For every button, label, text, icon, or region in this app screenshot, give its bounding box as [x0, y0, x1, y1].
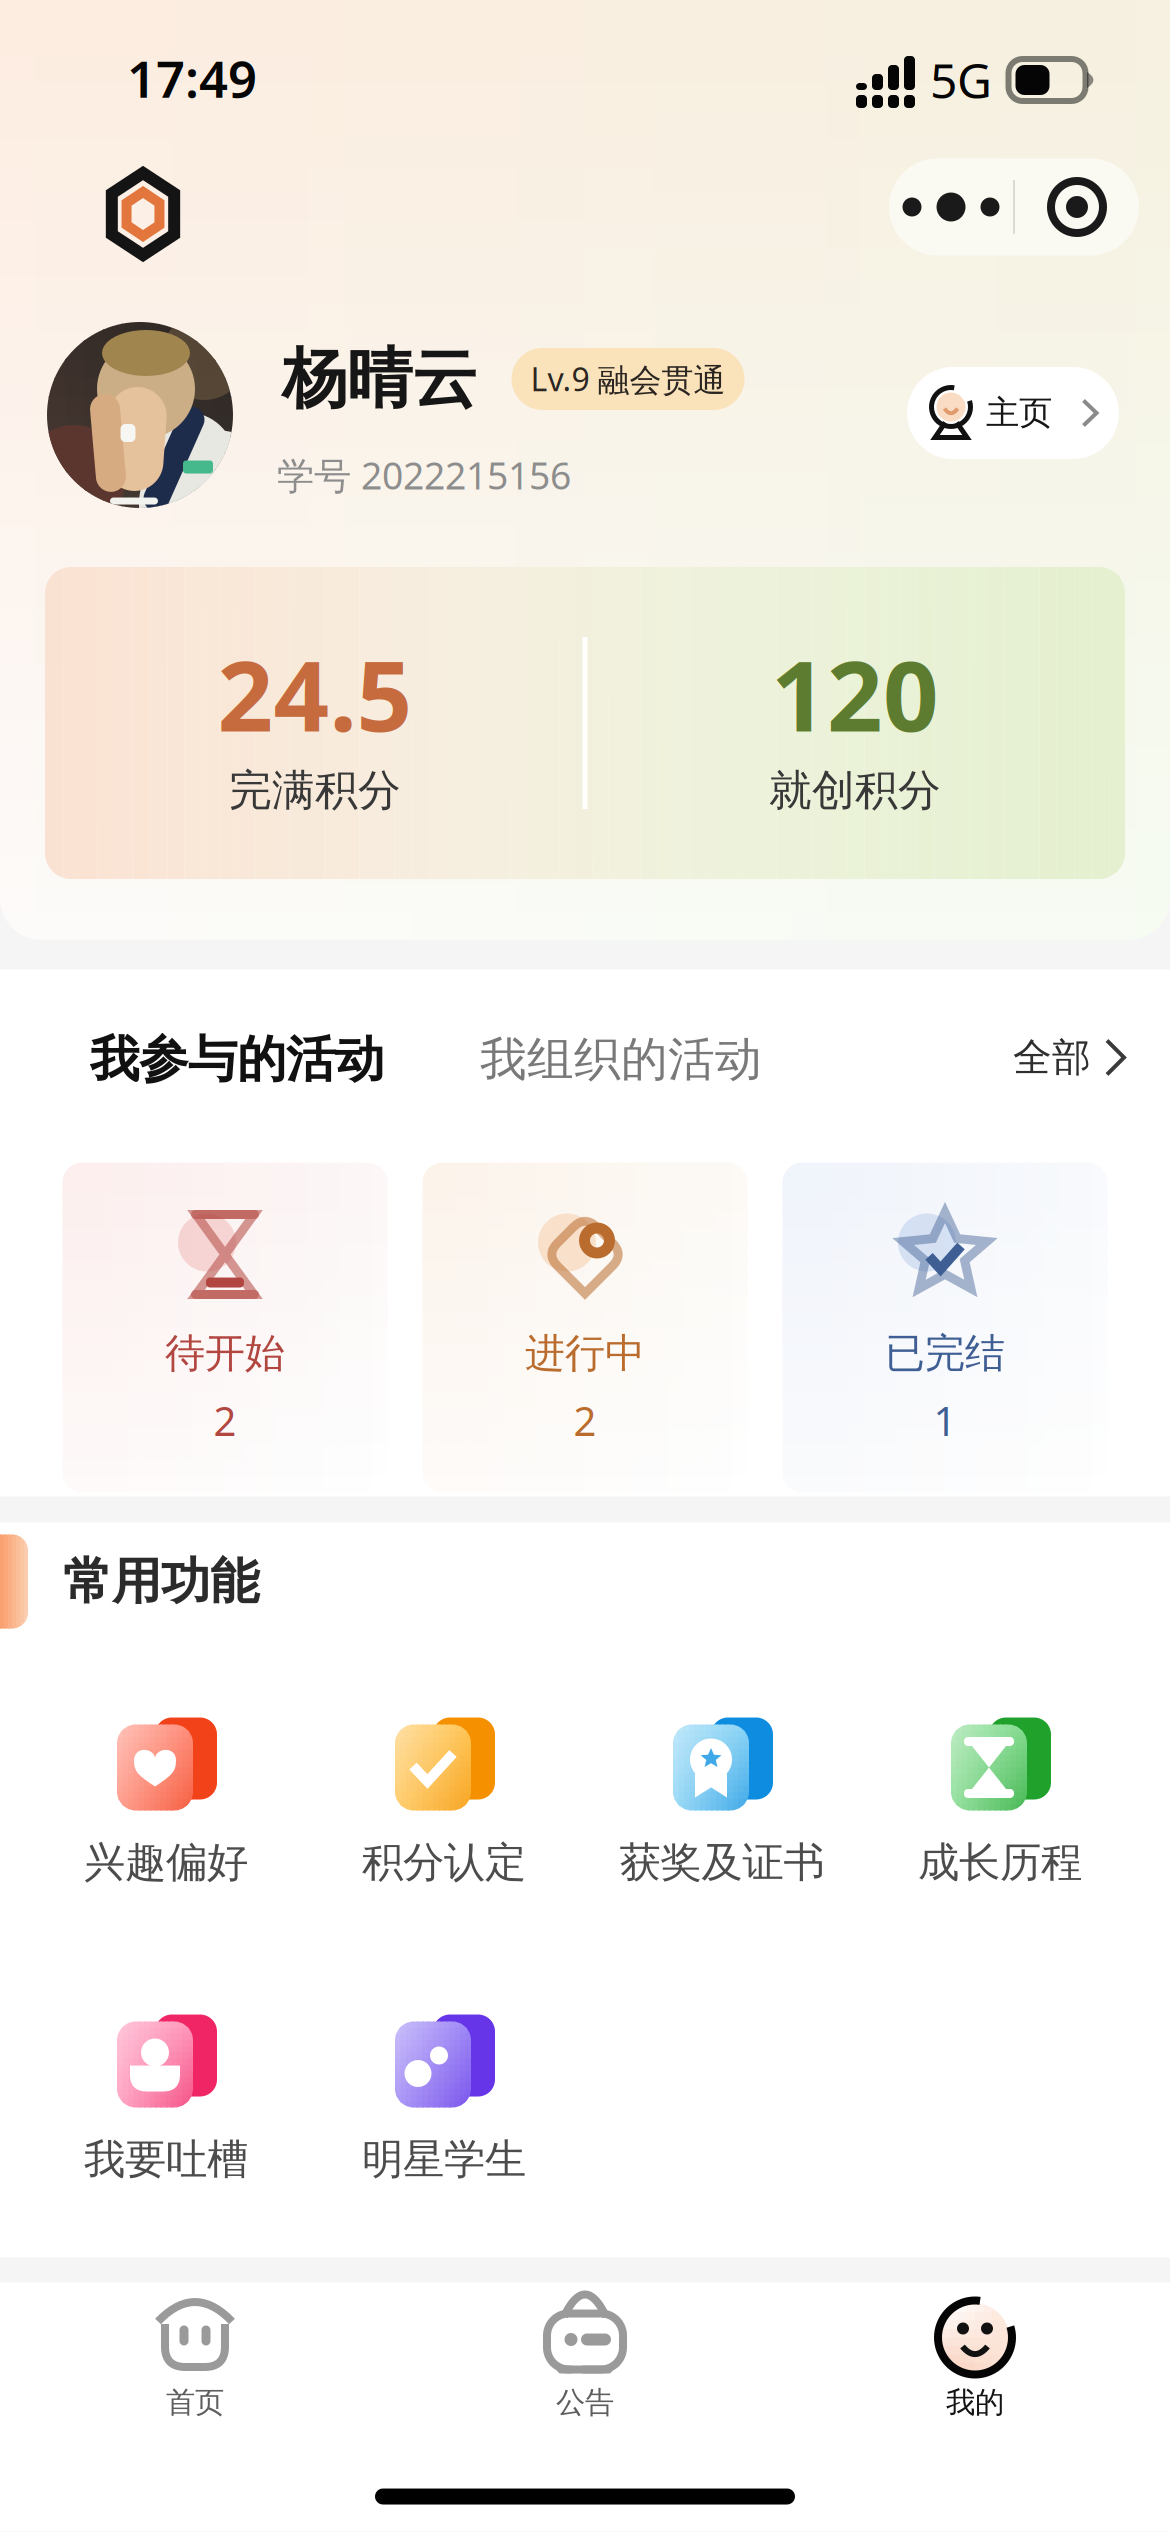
staticText: 2 — [573, 1394, 596, 1447]
button[interactable]: Close — [1015, 158, 1139, 255]
button[interactable]: 首页 — [0, 2289, 390, 2429]
staticText: 杨晴云 — [282, 339, 477, 419]
staticText: 进行中 — [525, 1329, 645, 1378]
button[interactable]: 我组织的活动 — [480, 1024, 780, 1094]
button[interactable]: 进行中 — [422, 1162, 747, 1492]
staticText: 公告 — [556, 2384, 614, 2420]
button[interactable]: 公告 — [390, 2289, 780, 2429]
staticText: 我的 — [946, 2384, 1004, 2420]
staticText: 24.5 — [217, 629, 412, 758]
staticText: 已完结 — [885, 1329, 1005, 1378]
staticText: 积分认定 — [362, 1837, 526, 1888]
staticText: 学号 2022215156 — [277, 450, 571, 500]
staticText: 明星学生 — [362, 2134, 526, 2185]
staticText: 常用功能 — [63, 1551, 259, 1612]
staticText: 2 — [213, 1394, 236, 1447]
staticText: 兴趣偏好 — [84, 1837, 248, 1888]
button[interactable]: 待开始 — [62, 1162, 387, 1492]
staticText: 全部 — [1013, 1034, 1091, 1081]
staticText: 1 — [933, 1394, 956, 1447]
button[interactable]: 兴趣偏好 — [27, 1694, 305, 1904]
staticText: 完满积分 — [229, 764, 401, 817]
button[interactable]: 获奖及证书 — [583, 1694, 861, 1904]
staticText: Lv.9 融会贯通 — [530, 358, 725, 400]
button[interactable]: 明星学生 — [305, 1991, 583, 2201]
staticText: 120 — [771, 629, 939, 758]
button[interactable]: 已完结 — [782, 1162, 1107, 1492]
staticText: 我参与的活动 — [90, 1029, 384, 1090]
staticText: 我要吐槽 — [84, 2134, 248, 2185]
staticText: 就创积分 — [769, 764, 941, 817]
button[interactable]: 我要吐槽 — [27, 1991, 305, 2201]
button[interactable]: 我参与的活动 — [90, 1024, 410, 1094]
staticText: 17:49 — [127, 44, 257, 112]
button[interactable]: 全部 — [944, 1022, 1124, 1092]
staticText: 我组织的活动 — [480, 1031, 762, 1088]
button[interactable]: Logo — [91, 162, 195, 266]
button[interactable]: More — [889, 158, 1013, 255]
staticText: 获奖及证书 — [619, 1837, 824, 1888]
staticText: 主页 — [986, 392, 1052, 433]
button[interactable]: 成长历程 — [861, 1694, 1139, 1904]
button[interactable]: 积分认定 — [305, 1694, 583, 1904]
staticText: 5G — [930, 48, 992, 112]
staticText: 成长历程 — [918, 1837, 1082, 1888]
staticText: 待开始 — [165, 1329, 285, 1378]
staticText: 首页 — [166, 2384, 224, 2420]
button[interactable]: 我的 — [780, 2289, 1170, 2429]
button[interactable]: 主页 — [907, 367, 1119, 459]
